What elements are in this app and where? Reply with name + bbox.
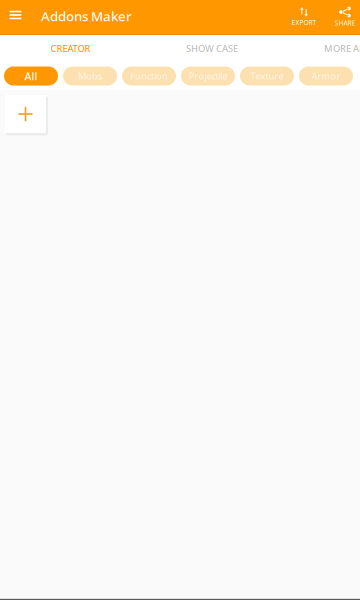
staticText: SHOW CASE [186, 42, 238, 55]
button[interactable]: Create addon [5, 95, 48, 135]
button[interactable]: Projectile [181, 66, 235, 85]
staticText: Projectile [188, 70, 227, 82]
staticText: SHARE [334, 18, 355, 27]
button[interactable]: MORE ADDONS [283, 35, 360, 62]
staticText: All [24, 69, 37, 83]
staticText: CREATOR [50, 42, 90, 55]
staticText: MORE ADDONS [324, 42, 360, 55]
button[interactable]: Menu [0, 0, 31, 34]
staticText: Function [130, 70, 168, 82]
button[interactable]: All [4, 66, 58, 85]
button[interactable]: Mobs [63, 66, 117, 85]
staticText: Addons Maker [41, 7, 132, 25]
button[interactable]: Function [122, 66, 176, 85]
staticText: Mobs [78, 70, 102, 82]
button[interactable]: CREATOR [0, 35, 141, 62]
button[interactable]: SHOW CASE [141, 35, 283, 62]
button[interactable]: EXPORT [278, 0, 330, 33]
staticText: Texture [250, 70, 283, 82]
button[interactable]: Armor [299, 66, 353, 85]
staticText: Armor [311, 70, 340, 82]
staticText: EXPORT [291, 18, 316, 27]
button[interactable]: Texture [240, 66, 294, 85]
button[interactable]: SHARE [330, 0, 360, 33]
